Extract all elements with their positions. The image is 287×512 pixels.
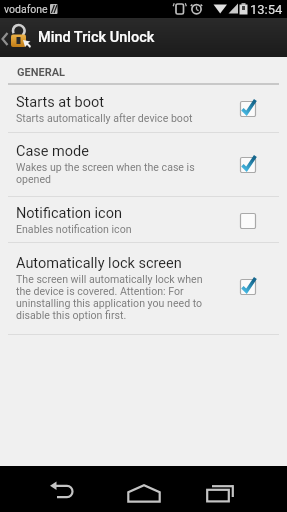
button[interactable] [0,242,287,333]
staticText: Starts at boot [16,94,104,111]
button[interactable] [0,196,287,241]
staticText: The screen will automatically lock when … [16,273,203,321]
staticText: Mind Trick Unlock [38,29,155,46]
button[interactable] [0,133,287,195]
staticText: Automatically lock screen [16,255,182,272]
button[interactable] [195,474,245,512]
button[interactable] [119,473,169,512]
staticText: Wakes up the screen when the case is ope… [16,161,195,185]
button[interactable] [38,470,88,510]
staticText: GENERAL [17,66,66,79]
staticText: Case mode [16,143,89,160]
staticText: 13:54 [250,2,283,17]
staticText: Starts automatically after device boot [16,112,193,124]
staticText: vodafone P [4,3,57,15]
staticText: Enables notification icon [16,223,132,235]
staticText: Notification icon [16,205,122,222]
button[interactable] [0,18,287,57]
button[interactable] [0,85,287,132]
